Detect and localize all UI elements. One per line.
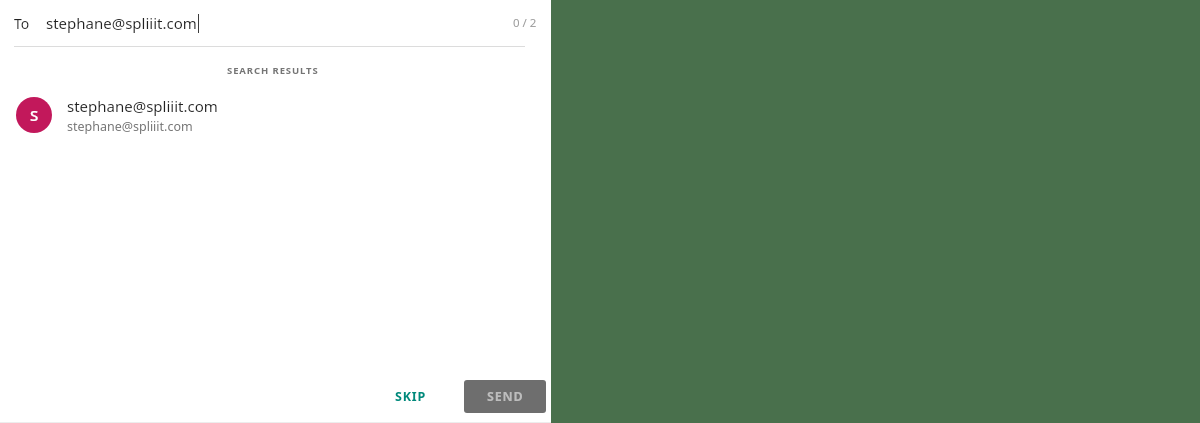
staticText: SEND (487, 388, 524, 405)
staticText: 0 / 2 (513, 15, 537, 31)
button[interactable]: SKIP (381, 381, 441, 412)
staticText: To (14, 14, 30, 33)
staticText: stephane@spliiit.com (67, 118, 193, 135)
staticText: SKIP (395, 388, 427, 405)
staticText: S (30, 105, 39, 125)
staticText: SEARCH RESULTS (227, 64, 319, 77)
button[interactable]: To (0, 0, 551, 46)
button[interactable]: SEND (464, 380, 546, 413)
staticText: stephane@spliiit.com (67, 96, 218, 116)
button[interactable]: S (0, 87, 551, 143)
staticText: stephane@spliiit.com (46, 13, 197, 33)
